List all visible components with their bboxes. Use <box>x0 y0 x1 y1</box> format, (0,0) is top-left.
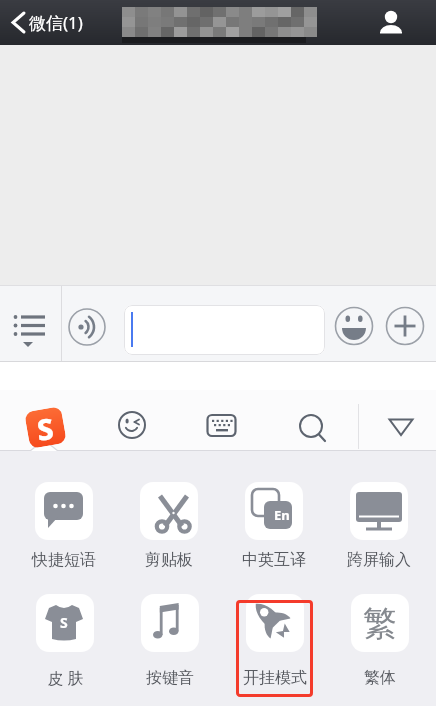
button[interactable] <box>68 308 106 346</box>
button[interactable] <box>204 405 246 447</box>
staticText: 剪贴板 <box>145 550 193 570</box>
staticText: 快捷短语 <box>32 550 96 570</box>
button[interactable] <box>141 594 199 652</box>
button[interactable] <box>350 482 408 540</box>
button[interactable] <box>36 594 94 652</box>
staticText: 繁体 <box>364 668 396 688</box>
button[interactable] <box>140 482 198 540</box>
button[interactable] <box>124 305 325 355</box>
staticText: 按键音 <box>146 668 194 688</box>
button[interactable] <box>111 404 153 446</box>
button[interactable] <box>35 482 93 540</box>
staticText: En <box>274 506 290 524</box>
button[interactable] <box>0 287 61 361</box>
staticText: 微信(1) <box>29 11 83 34</box>
button[interactable] <box>351 594 409 652</box>
button[interactable] <box>386 307 424 345</box>
button[interactable] <box>370 0 415 45</box>
staticText: 繁 <box>363 602 397 645</box>
button[interactable] <box>20 402 70 452</box>
button[interactable] <box>292 405 334 447</box>
button[interactable] <box>378 405 424 447</box>
staticText: S <box>60 613 68 632</box>
staticText: S <box>33 408 58 447</box>
button[interactable] <box>245 482 303 540</box>
button[interactable] <box>335 307 373 345</box>
button[interactable] <box>246 594 304 652</box>
button[interactable] <box>0 0 110 45</box>
staticText: 开挂模式 <box>243 668 307 688</box>
staticText: 跨屏输入 <box>347 550 411 570</box>
staticText: 中英互译 <box>242 550 306 570</box>
staticText: 皮 肤 <box>47 667 84 689</box>
